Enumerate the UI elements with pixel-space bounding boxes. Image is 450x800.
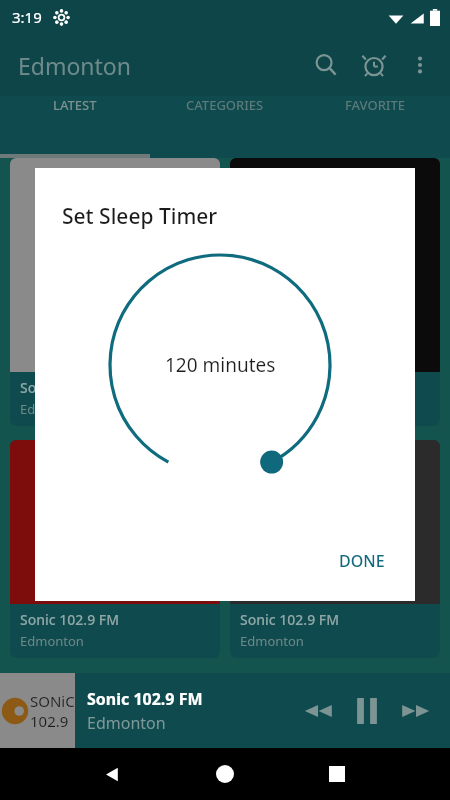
button[interactable]: LATEST — [0, 96, 150, 114]
button[interactable]: Pause — [342, 686, 392, 736]
staticText: Sonic 102.9 FM — [240, 610, 340, 629]
button[interactable]: SONiC — [0, 673, 450, 748]
button[interactable]: Search — [302, 41, 350, 89]
staticText: Edmonton — [18, 50, 131, 81]
staticText: Sonic 102.9 FM — [20, 610, 120, 629]
button[interactable]: More options — [398, 43, 442, 87]
button[interactable]: CATEGORIES — [150, 96, 300, 114]
staticText: FAVORITE — [345, 96, 406, 114]
button[interactable]: Sonic 102.9 FM — [230, 440, 440, 658]
button[interactable]: Back — [88, 750, 136, 798]
staticText: Edmonton — [240, 632, 304, 650]
button[interactable]: Sonic 102.9 FM — [10, 158, 220, 426]
staticText: Sonic 102.9 FM — [240, 378, 340, 397]
staticText: 3:19 — [12, 7, 42, 27]
button[interactable]: Home — [201, 750, 249, 798]
staticText: Set Sleep Timer — [62, 202, 218, 231]
staticText: SONiC — [30, 691, 75, 711]
button[interactable]: Sleep timer — [350, 41, 398, 89]
staticText: Edmonton — [87, 712, 166, 734]
staticText: Edmonton — [20, 632, 84, 650]
staticText: Edmonton — [20, 400, 84, 418]
staticText: DONE — [339, 550, 385, 572]
staticText: 120 minutes — [165, 352, 276, 378]
staticText: 102.9 — [30, 711, 69, 731]
staticText: LATEST — [53, 96, 97, 114]
button[interactable]: Sonic 102.9 FM — [10, 440, 220, 658]
button[interactable]: Sonic 102.9 FM — [230, 158, 440, 426]
button[interactable]: Recents — [313, 750, 361, 798]
button[interactable]: Rewind — [294, 687, 342, 735]
staticText: CATEGORIES — [186, 96, 264, 114]
button[interactable]: DONE — [327, 541, 397, 581]
button[interactable]: FAVORITE — [300, 96, 450, 114]
staticText: Sonic 102.9 FM — [87, 688, 203, 710]
staticText: Sonic 102.9 FM — [20, 378, 120, 397]
button[interactable]: Edmonton — [18, 50, 131, 81]
button[interactable]: Fast forward — [392, 687, 440, 735]
